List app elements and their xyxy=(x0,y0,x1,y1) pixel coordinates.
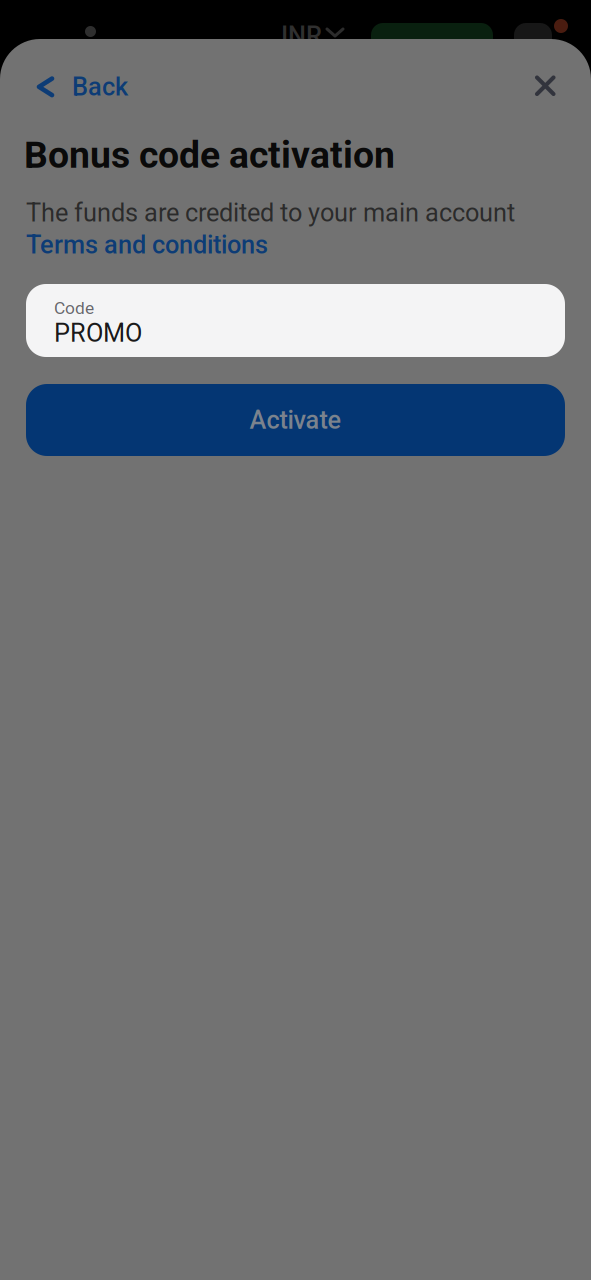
button[interactable]: Back xyxy=(0,58,144,116)
button[interactable]: Activate xyxy=(26,384,565,456)
button[interactable]: Close xyxy=(523,63,567,108)
staticText: The funds are credited to your main acco… xyxy=(26,198,515,228)
staticText: Back xyxy=(72,72,128,102)
staticText: PROMO xyxy=(54,318,142,348)
staticText: Code xyxy=(54,298,94,318)
staticText: Activate xyxy=(249,405,341,435)
staticText: Bonus code activation xyxy=(24,133,395,177)
staticText: INR xyxy=(281,21,322,51)
button[interactable]: Terms and conditions xyxy=(26,226,268,264)
staticText: Terms and conditions xyxy=(26,230,268,260)
